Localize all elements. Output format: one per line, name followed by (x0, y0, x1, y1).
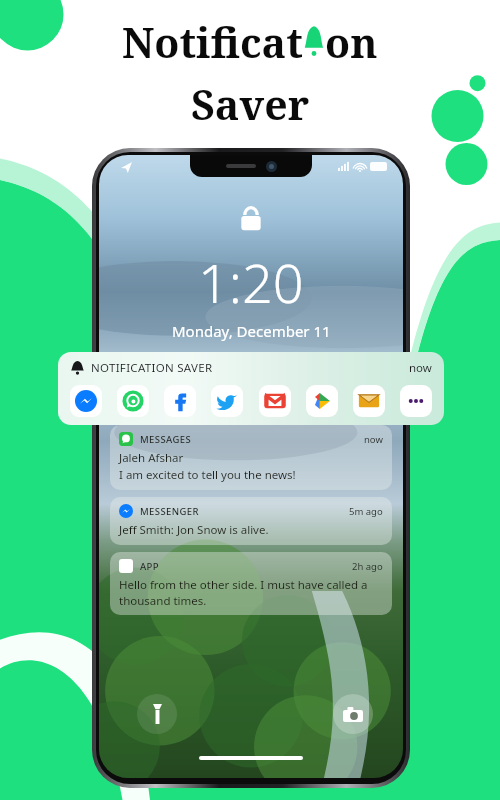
staticText: I am excited to tell you the news! (119, 467, 296, 483)
button[interactable]: Twitter (211, 385, 243, 417)
staticText: MESSENGER (140, 505, 199, 518)
staticText: NOTIFICATION SAVER (91, 360, 213, 376)
button[interactable]: Camera (333, 694, 373, 734)
button[interactable]: Email (353, 385, 385, 417)
staticText: on (325, 14, 378, 70)
staticText: Notificat (122, 14, 303, 70)
button[interactable]: Gmail (259, 385, 291, 417)
button[interactable]: NOTIFICATION SAVER (58, 352, 444, 425)
button[interactable]: Play Store (306, 385, 338, 417)
button[interactable]: Flashlight (137, 694, 177, 734)
button[interactable]: WhatsApp (117, 385, 149, 417)
staticText: Monday, December 11 (172, 321, 331, 341)
staticText: 5m ago (349, 505, 383, 518)
button[interactable]: APP (110, 552, 392, 615)
staticText: now (364, 433, 383, 446)
button[interactable]: More (400, 385, 432, 417)
staticText: MESSAGES (140, 433, 192, 446)
button[interactable]: MESSENGER (110, 497, 392, 545)
staticText: Hello from the other side. I must have c… (119, 577, 383, 608)
button[interactable]: Facebook (164, 385, 196, 417)
button[interactable]: Messenger (70, 385, 102, 417)
staticText: Saver (191, 76, 310, 132)
button[interactable]: MESSAGES (110, 425, 392, 490)
staticText: 2h ago (352, 560, 383, 573)
staticText: now (409, 360, 432, 376)
staticText: APP (140, 560, 160, 573)
staticText: 1:20 (198, 245, 304, 319)
staticText: Jeff Smith: Jon Snow is alive. (119, 522, 269, 538)
staticText: Jaleh Afshar (119, 450, 184, 466)
